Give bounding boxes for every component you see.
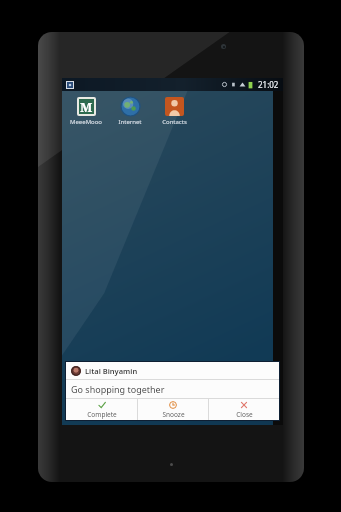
button[interactable]: M bbox=[68, 96, 104, 127]
staticText: 21:02 bbox=[258, 79, 279, 90]
button[interactable]: Close bbox=[209, 399, 279, 420]
button[interactable]: Snooze bbox=[138, 399, 208, 420]
staticText: M bbox=[80, 98, 93, 116]
staticText: Internet bbox=[118, 118, 142, 126]
staticText: Complete bbox=[87, 410, 117, 419]
button[interactable]: Contacts bbox=[156, 96, 192, 127]
staticText: Contacts bbox=[162, 118, 187, 126]
button[interactable]: Complete bbox=[66, 399, 137, 420]
staticText: Snooze bbox=[162, 410, 185, 419]
staticText: Close bbox=[236, 410, 253, 419]
staticText: Go shopping together bbox=[71, 383, 165, 395]
staticText: MeeeMooo bbox=[70, 118, 102, 126]
staticText: Lital Binyamin bbox=[85, 366, 138, 376]
button[interactable]: Internet bbox=[112, 96, 148, 127]
button[interactable]: Lital Binyamin bbox=[66, 362, 279, 379]
button[interactable]: Go shopping together bbox=[66, 380, 279, 398]
